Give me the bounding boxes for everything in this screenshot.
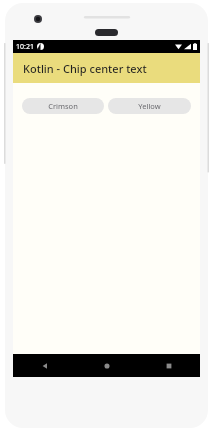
button[interactable]: Back: [13, 354, 76, 377]
staticText: Kotlin - Chip center text: [23, 61, 147, 76]
staticText: Crimson: [48, 101, 78, 111]
staticText: 10:21: [16, 42, 34, 52]
button[interactable]: Yellow: [108, 98, 191, 114]
staticText: Yellow: [138, 101, 161, 111]
button[interactable]: Crimson: [22, 98, 104, 114]
button[interactable]: Recent apps: [138, 354, 200, 377]
button[interactable]: Home: [76, 354, 138, 377]
